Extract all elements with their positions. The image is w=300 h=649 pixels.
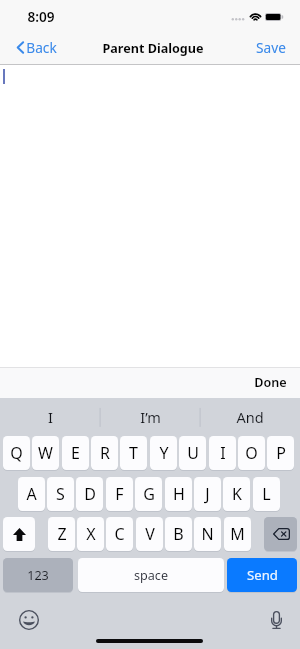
- staticText: T: [129, 442, 138, 464]
- button[interactable]: space: [78, 558, 224, 592]
- staticText: I’m: [140, 407, 161, 427]
- staticText: Send: [247, 566, 278, 584]
- staticText: S: [56, 483, 65, 505]
- staticText: I: [220, 442, 226, 464]
- button[interactable]: W: [32, 436, 59, 470]
- staticText: O: [245, 442, 258, 464]
- staticText: 123: [27, 567, 49, 584]
- button[interactable]: Z: [48, 517, 75, 551]
- button[interactable]: E: [62, 436, 89, 470]
- button[interactable]: F: [106, 477, 133, 511]
- staticText: H: [173, 483, 185, 505]
- button[interactable]: T: [120, 436, 147, 470]
- button[interactable]: And: [200, 398, 300, 435]
- button[interactable]: Shift: [3, 517, 35, 551]
- staticText: A: [26, 483, 37, 505]
- staticText: L: [262, 483, 271, 505]
- button[interactable]: Emoji: [15, 606, 43, 634]
- button[interactable]: K: [223, 477, 250, 511]
- button[interactable]: U: [179, 436, 206, 470]
- staticText: And: [236, 407, 264, 427]
- button[interactable]: I’m: [100, 398, 200, 435]
- button[interactable]: Delete: [264, 517, 297, 551]
- staticText: F: [115, 483, 124, 505]
- button[interactable]: V: [136, 517, 163, 551]
- staticText: D: [84, 483, 96, 505]
- button[interactable]: Y: [150, 436, 177, 470]
- staticText: Done: [254, 374, 287, 391]
- button[interactable]: Back: [11, 33, 63, 62]
- staticText: W: [38, 442, 53, 464]
- button[interactable]: D: [76, 477, 103, 511]
- button[interactable]: Done: [241, 369, 300, 396]
- staticText: Y: [159, 442, 169, 464]
- staticText: J: [205, 483, 210, 505]
- staticText: Parent Dialogue: [102, 40, 204, 57]
- button[interactable]: Send: [227, 558, 297, 592]
- staticText: space: [134, 567, 168, 584]
- staticText: P: [276, 442, 286, 464]
- button[interactable]: A: [18, 477, 45, 511]
- staticText: Q: [10, 442, 23, 464]
- button[interactable]: C: [106, 517, 133, 551]
- staticText: R: [100, 442, 110, 464]
- staticText: U: [187, 442, 199, 464]
- button[interactable]: N: [194, 517, 221, 551]
- button[interactable]: M: [224, 517, 251, 551]
- staticText: X: [86, 523, 96, 545]
- button[interactable]: B: [165, 517, 192, 551]
- staticText: K: [232, 483, 242, 505]
- staticText: Back: [26, 38, 57, 57]
- staticText: G: [143, 483, 155, 505]
- staticText: E: [71, 442, 80, 464]
- staticText: 8:09: [27, 7, 55, 26]
- staticText: M: [230, 523, 245, 545]
- button[interactable]: 123: [3, 558, 73, 592]
- button[interactable]: I: [0, 398, 100, 435]
- button[interactable]: I: [209, 436, 236, 470]
- button[interactable]: X: [77, 517, 104, 551]
- staticText: B: [173, 523, 184, 545]
- button[interactable]: G: [135, 477, 162, 511]
- button[interactable]: Q: [3, 436, 30, 470]
- button[interactable]: S: [47, 477, 74, 511]
- button[interactable]: L: [253, 477, 280, 511]
- button[interactable]: Dictate: [262, 606, 290, 634]
- button[interactable]: O: [238, 436, 265, 470]
- button[interactable]: H: [165, 477, 192, 511]
- staticText: Save: [256, 38, 286, 57]
- staticText: I: [48, 407, 53, 427]
- staticText: Z: [57, 523, 67, 545]
- staticText: V: [145, 523, 155, 545]
- button[interactable]: Save: [242, 33, 300, 62]
- staticText: C: [114, 523, 125, 545]
- button[interactable]: P: [267, 436, 294, 470]
- button[interactable]: R: [91, 436, 118, 470]
- button[interactable]: J: [194, 477, 221, 511]
- staticText: N: [201, 523, 214, 545]
